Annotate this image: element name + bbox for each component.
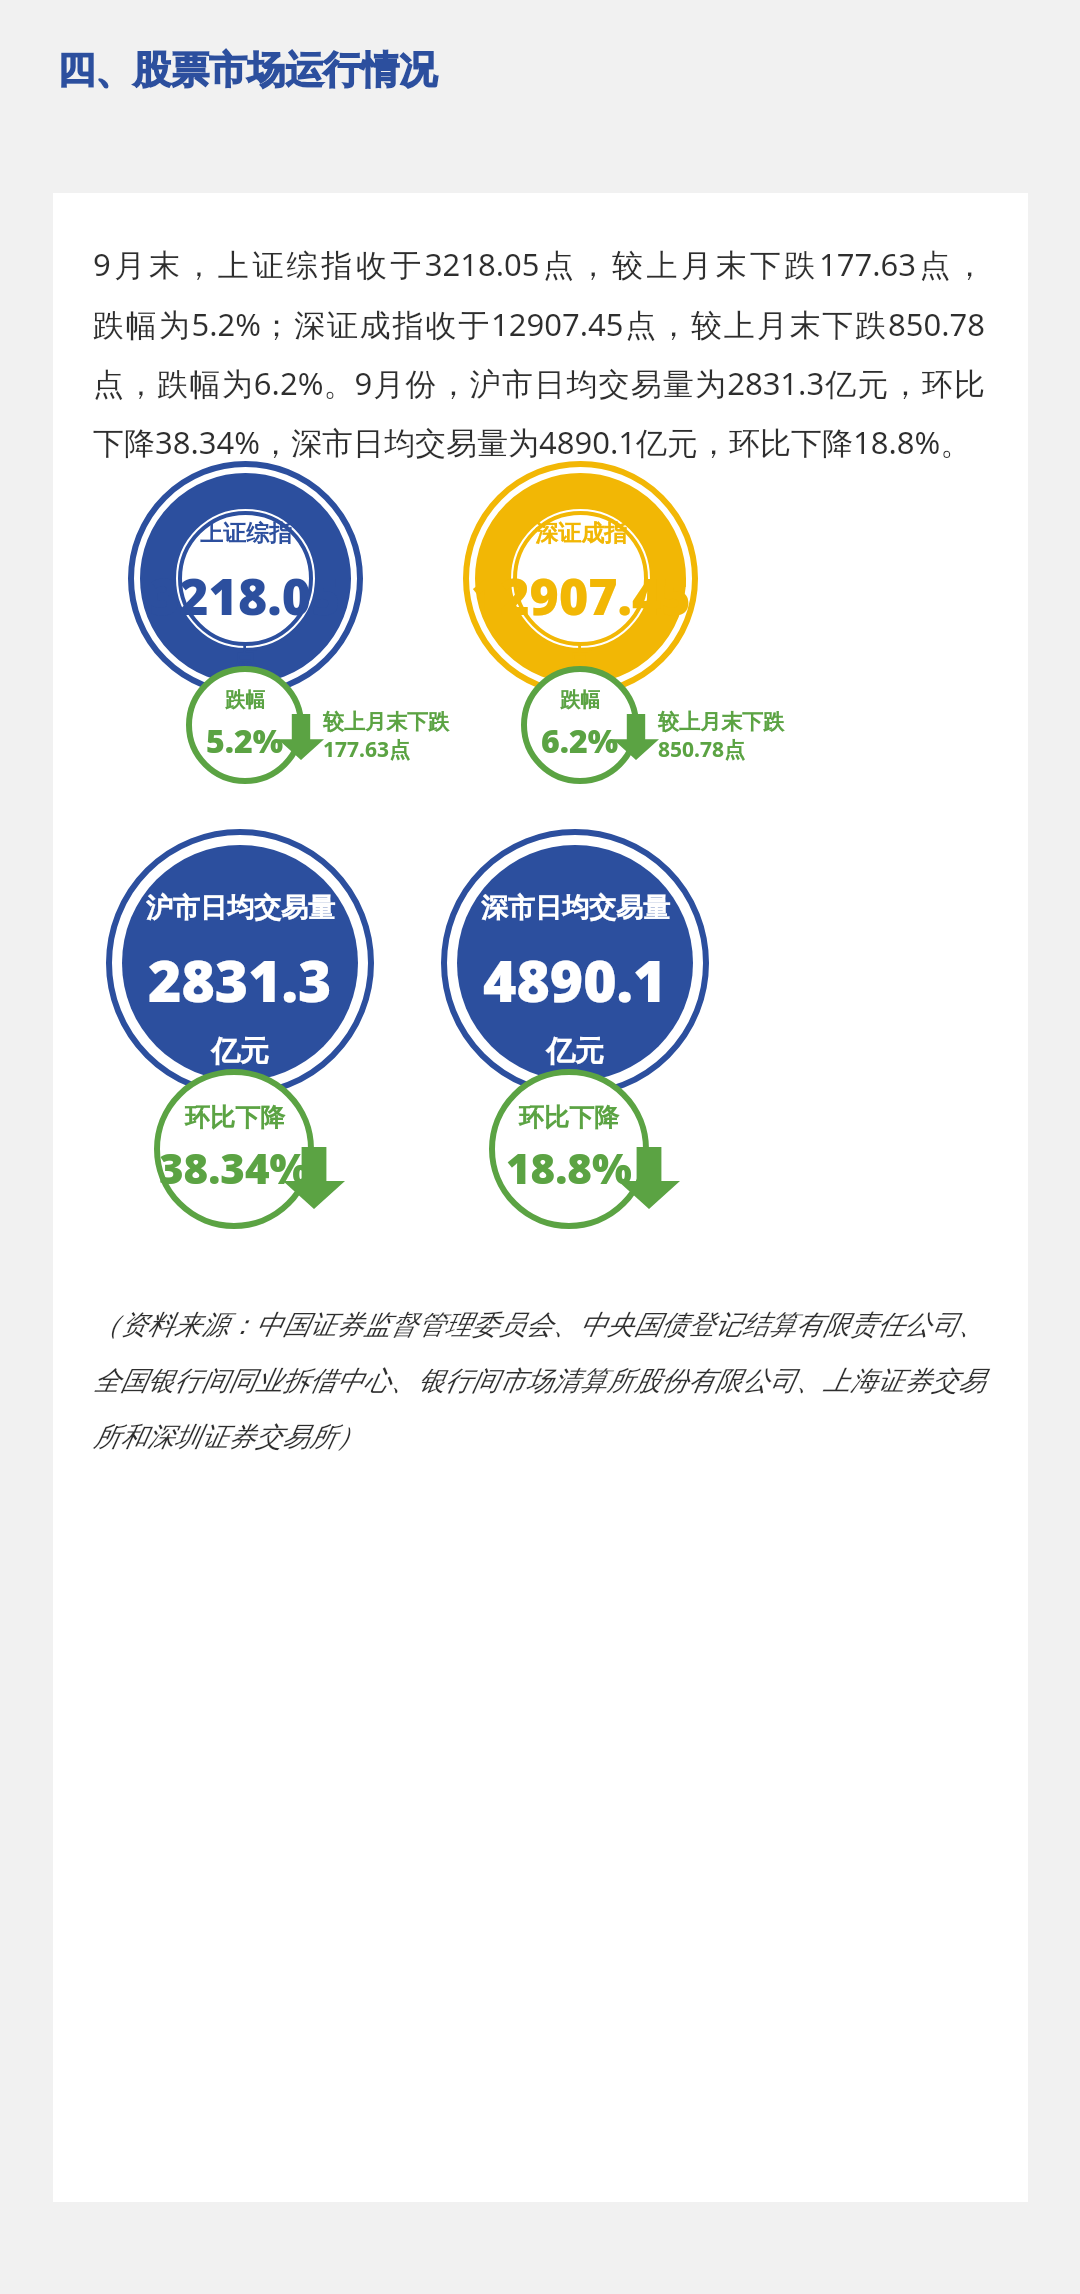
staticText: 850.78点: [658, 735, 745, 764]
staticText: 2831.3: [148, 941, 332, 1019]
button[interactable]: 沪市日均交易量: [86, 829, 406, 1229]
staticText: 点: [233, 642, 258, 673]
staticText: 较上月末下跌: [323, 709, 449, 735]
staticText: 环比下降: [185, 1102, 285, 1133]
staticText: 深市日均交易量: [481, 891, 670, 925]
button[interactable]: 上证综指: [118, 461, 418, 781]
staticText: 跌幅: [225, 688, 265, 713]
staticText: 12907.45: [471, 562, 691, 630]
staticText: 上证综指: [200, 519, 292, 548]
other: 下降: [618, 1147, 680, 1209]
staticText: 3218.05: [150, 562, 341, 630]
staticText: （资料来源：中国证券监督管理委员会、中央国债登记结算有限责任公司、全国银行间同业…: [93, 1308, 985, 1454]
staticText: 18.8%: [506, 1139, 632, 1196]
staticText: 5.2%: [206, 719, 284, 763]
other: 下降: [278, 714, 324, 760]
staticText: 四、股票市场运行情况: [57, 46, 437, 94]
button[interactable]: 四、股票市场运行情况: [55, 44, 439, 96]
staticText: 亿元: [211, 1033, 269, 1070]
staticText: 环比下降: [519, 1102, 619, 1133]
staticText: 点: [568, 642, 593, 673]
button[interactable]: 深市日均交易量: [421, 829, 741, 1229]
staticText: 沪市日均交易量: [146, 891, 335, 925]
staticText: 较上月末下跌: [658, 709, 784, 735]
staticText: 38.34%: [159, 1139, 310, 1196]
button[interactable]: 深证成指: [453, 461, 753, 781]
staticText: 亿元: [546, 1033, 604, 1070]
staticText: 177.63点: [323, 735, 410, 764]
other: 下降: [283, 1147, 345, 1209]
staticText: 跌幅: [560, 688, 600, 713]
staticText: 9月末，上证综指收于3218.05点，较上月末下跌177.63点，跌幅为5.2%…: [93, 243, 985, 463]
staticText: 6.2%: [541, 719, 619, 763]
other: 下降: [613, 714, 659, 760]
staticText: 深证成指: [535, 519, 627, 548]
staticText: 4890.1: [483, 941, 667, 1019]
